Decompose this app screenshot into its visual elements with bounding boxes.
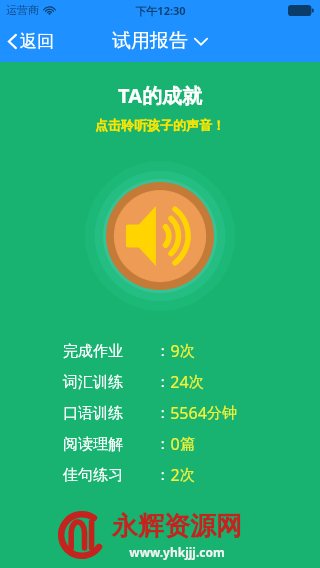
staticText: ： [155, 404, 170, 423]
staticText: 次 [180, 342, 195, 361]
staticText: 5564 [170, 402, 207, 424]
staticText: ： [155, 373, 170, 392]
button[interactable]: 口语训练 [0, 397, 320, 428]
staticText: ： [155, 466, 170, 485]
staticText: 篇 [180, 435, 195, 454]
button[interactable]: 完成作业 [0, 335, 320, 366]
staticText: ： [155, 435, 170, 454]
button[interactable]: 返回 [0, 25, 64, 58]
staticText: TA的成就 [118, 82, 202, 109]
staticText: 次 [180, 466, 195, 485]
staticText: 返回 [20, 31, 54, 52]
button[interactable]: 试用报告 [104, 25, 216, 57]
staticText: 佳句练习 [63, 466, 123, 485]
staticText: 次 [189, 373, 204, 392]
staticText: ： [155, 342, 170, 361]
staticText: 9 [170, 340, 180, 362]
staticText: 词汇训练 [63, 373, 123, 392]
staticText: 24 [170, 371, 189, 393]
button[interactable]: 词汇训练 [0, 366, 320, 397]
button[interactable]: 阅读理解 [0, 428, 320, 459]
staticText: 0 [170, 433, 180, 455]
button[interactable]: 佳句练习 [0, 459, 320, 490]
staticText: 2 [170, 464, 180, 486]
staticText: 永辉资源网 [112, 510, 242, 543]
button[interactable]: 播放孩子的声音 [85, 161, 235, 311]
staticText: 口语训练 [63, 404, 123, 423]
staticText: 运营商 [6, 3, 39, 17]
staticText: 完成作业 [63, 342, 123, 361]
staticText: 阅读理解 [63, 435, 123, 454]
staticText: www.yhkjjj.com [129, 544, 225, 560]
staticText: 下午12:30 [135, 3, 186, 18]
staticText: 试用报告 [112, 29, 188, 53]
staticText: 点击聆听孩子的声音！ [95, 117, 225, 133]
staticText: 分钟 [207, 404, 237, 423]
